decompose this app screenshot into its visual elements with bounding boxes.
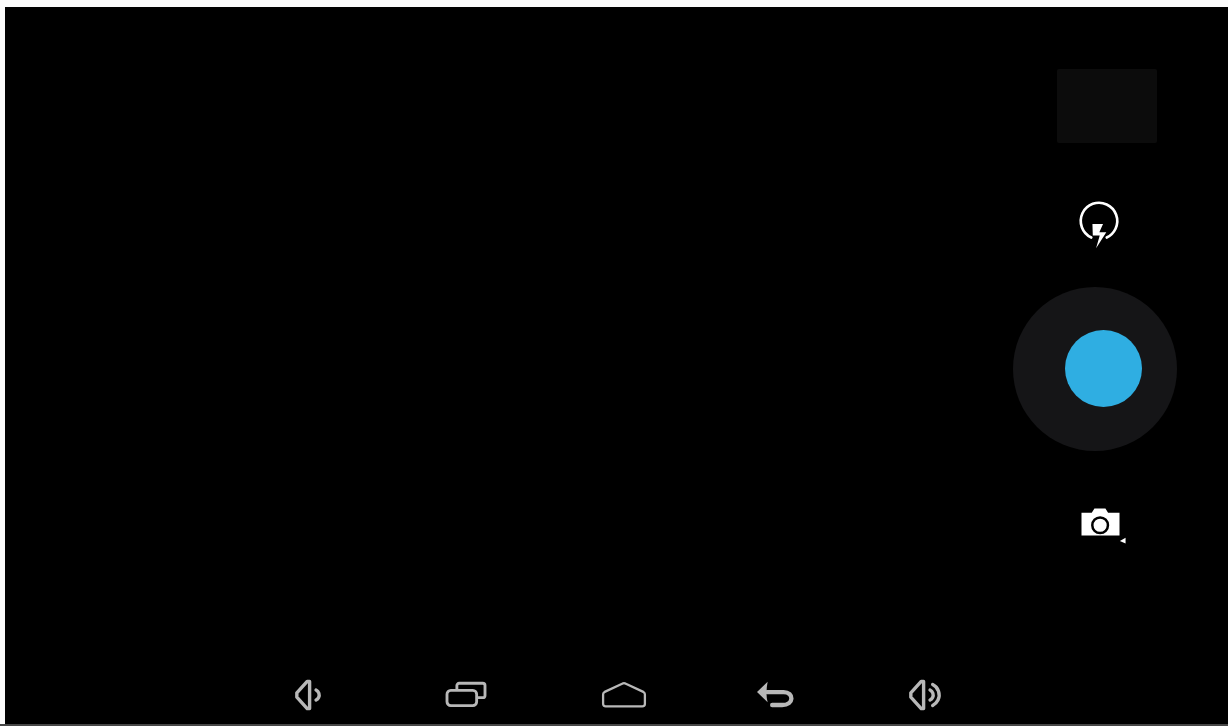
button[interactable]: Take photo [1013, 287, 1177, 451]
button[interactable]: Home [605, 673, 643, 717]
button[interactable]: Volume up [907, 673, 945, 717]
button[interactable]: Flash mode [1067, 189, 1131, 253]
button[interactable]: Recent apps [447, 673, 485, 717]
button[interactable]: Switch camera mode [1074, 496, 1130, 552]
button[interactable]: Back [757, 672, 795, 716]
button[interactable]: Volume down [293, 673, 331, 717]
